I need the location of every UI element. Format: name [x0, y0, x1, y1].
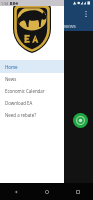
button[interactable]: Download EA [0, 97, 64, 109]
staticText: Need a rebate? [5, 112, 37, 118]
staticText: NEWS [64, 24, 76, 29]
button[interactable]: Open navigation drawer [0, 6, 15, 21]
staticText: News [5, 76, 17, 82]
button[interactable]: WhatsApp chat [73, 113, 88, 128]
button[interactable]: More options [78, 6, 93, 21]
staticText: 1:34 [1, 1, 8, 6]
button[interactable]: Need a rebate? [0, 109, 64, 121]
button[interactable]: NEWS [46, 21, 93, 31]
button[interactable]: Back [0, 183, 31, 200]
staticText: Download EA [5, 100, 33, 106]
staticText: SIGNALS [14, 24, 32, 29]
button[interactable]: Home [31, 183, 62, 200]
button[interactable]: SIGNALS [0, 21, 46, 31]
staticText: Home [5, 64, 18, 70]
button[interactable]: Home [0, 60, 64, 73]
staticText: Economic Calendar [5, 88, 45, 94]
button[interactable]: News [0, 73, 64, 85]
button[interactable]: Economic Calendar [0, 85, 64, 97]
button[interactable]: Recent apps [62, 183, 93, 200]
